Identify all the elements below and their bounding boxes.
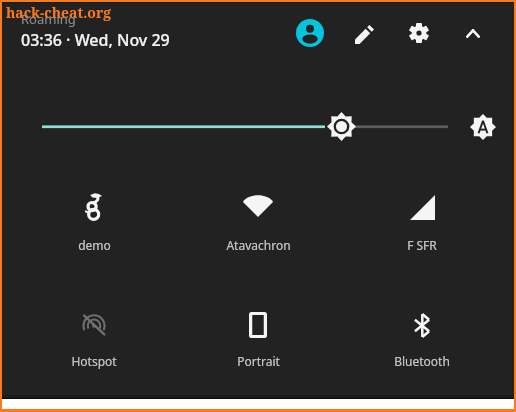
button[interactable]: Auto brightness bbox=[470, 114, 496, 140]
staticText: hack-cheat.org bbox=[6, 3, 112, 22]
button[interactable]: F SFR bbox=[349, 170, 495, 266]
button[interactable]: Settings bbox=[403, 17, 435, 49]
staticText: 03:36 · Wed, Nov 29 bbox=[21, 29, 170, 51]
button[interactable]: Bluetooth bbox=[349, 290, 495, 386]
button[interactable]: Edit tiles bbox=[349, 19, 380, 50]
staticText: Roaming bbox=[21, 10, 76, 28]
staticText: Bluetooth bbox=[394, 353, 450, 369]
button[interactable]: demo bbox=[21, 170, 167, 266]
button[interactable]: Collapse bbox=[458, 17, 488, 50]
staticText: Atavachron bbox=[226, 237, 291, 253]
staticText: demo bbox=[78, 237, 111, 253]
button[interactable]: User account bbox=[290, 13, 330, 53]
staticText: Hotspot bbox=[71, 353, 117, 369]
button[interactable]: Atavachron bbox=[185, 170, 331, 266]
button[interactable]: Portrait bbox=[185, 290, 331, 386]
button[interactable]: Brightness bbox=[327, 112, 356, 141]
button[interactable]: Hotspot bbox=[21, 290, 167, 386]
staticText: F SFR bbox=[407, 237, 437, 253]
staticText: Portrait bbox=[237, 353, 280, 369]
